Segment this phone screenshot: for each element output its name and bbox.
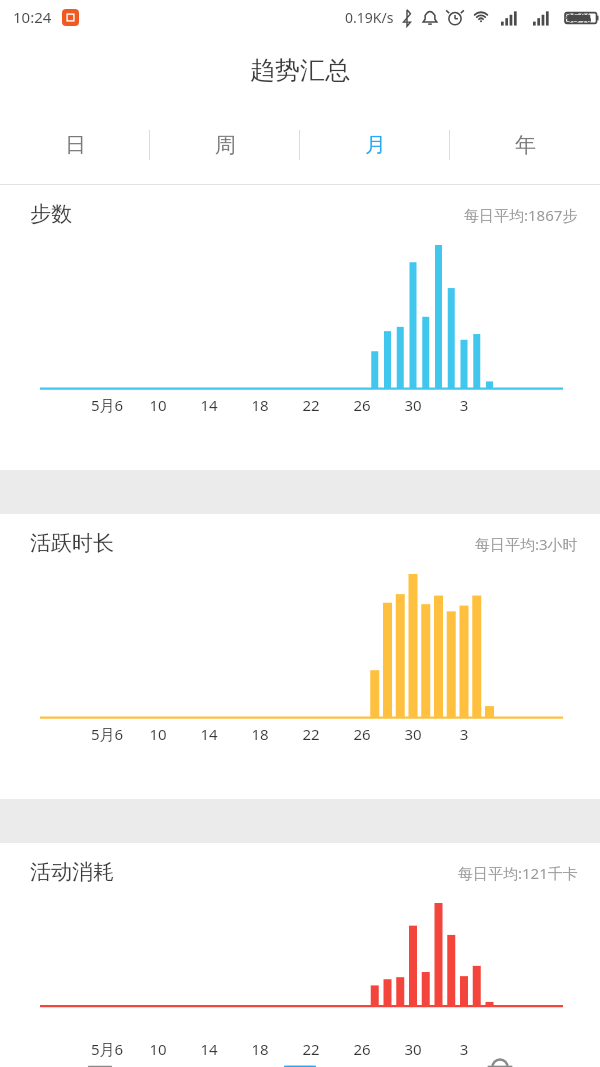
staticText: 22 [281, 1039, 341, 1059]
staticText: 3 [434, 724, 494, 744]
staticText: 年 [515, 132, 536, 158]
staticText: 14 [179, 724, 239, 744]
staticText: 30 [383, 724, 443, 744]
staticText: 0.19K/s [345, 8, 394, 27]
staticText: 3 [434, 1039, 494, 1059]
staticText: 5月6 [77, 1039, 137, 1059]
staticText: 22 [281, 724, 341, 744]
staticText: 10 [128, 395, 188, 415]
staticText: 14 [179, 395, 239, 415]
staticText: 月 [365, 132, 386, 158]
staticText: 22 [281, 395, 341, 415]
button[interactable]: 月 [300, 106, 450, 184]
staticText: 10 [128, 1039, 188, 1059]
staticText: 活跃时长 [30, 530, 114, 556]
staticText: 18 [230, 1039, 290, 1059]
staticText: 26 [332, 1039, 392, 1059]
staticText: 趋势汇总 [250, 55, 350, 86]
staticText: 26 [332, 395, 392, 415]
staticText: 每日平均:1867步 [464, 205, 578, 225]
staticText: 30 [383, 1039, 443, 1059]
staticText: 30 [383, 395, 443, 415]
button[interactable]: 年 [450, 106, 600, 184]
staticText: 每日平均:121千卡 [458, 863, 578, 883]
staticText: 日 [65, 132, 86, 158]
staticText: 18 [230, 724, 290, 744]
staticText: 18 [230, 395, 290, 415]
staticText: 5月6 [77, 395, 137, 415]
staticText: 5月6 [77, 724, 137, 744]
staticText: 85% [564, 8, 592, 27]
staticText: 周 [215, 132, 236, 158]
staticText: 26 [332, 724, 392, 744]
staticText: 10:24 [13, 7, 52, 27]
staticText: 10 [128, 724, 188, 744]
staticText: 14 [179, 1039, 239, 1059]
staticText: 每日平均:3小时 [475, 534, 578, 554]
button[interactable]: 周 [150, 106, 300, 184]
staticText: 活动消耗 [30, 859, 114, 885]
staticText: 步数 [30, 201, 72, 227]
button[interactable]: 日 [0, 106, 150, 184]
staticText: 3 [434, 395, 494, 415]
